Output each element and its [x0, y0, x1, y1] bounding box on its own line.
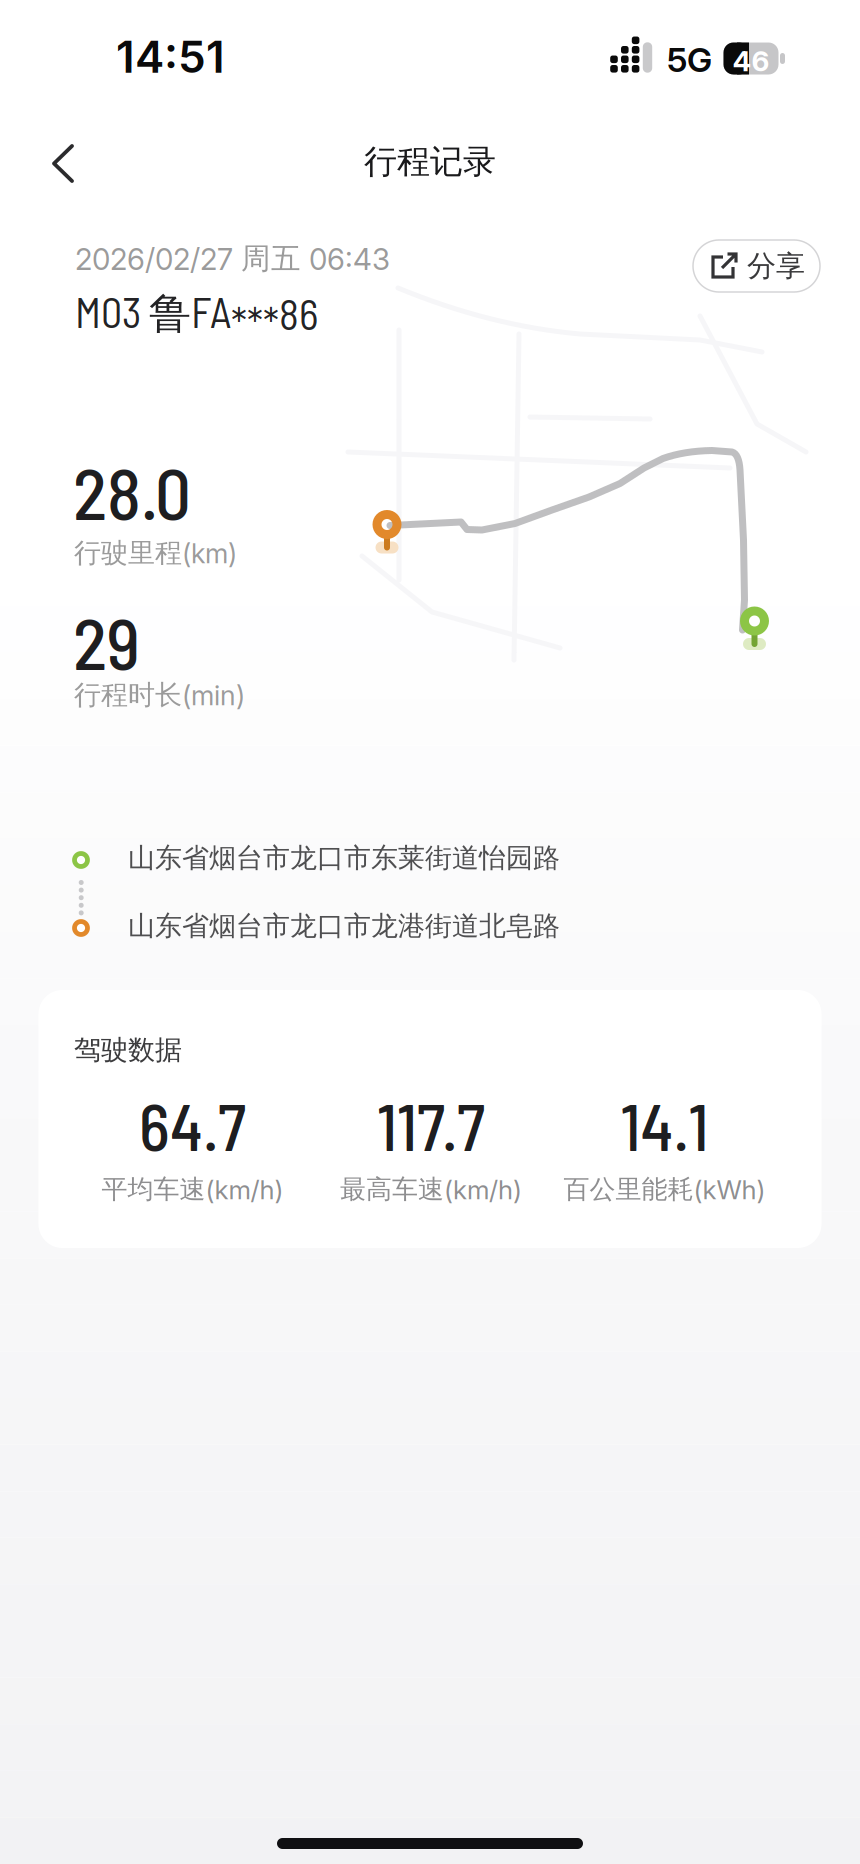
staticText: 29: [73, 599, 140, 684]
button[interactable]: Back: [0, 0, 860, 1864]
staticText: 行驶里程(km): [74, 536, 237, 570]
staticText: 117.7: [377, 1086, 485, 1164]
staticText: 山东省烟台市龙口市东莱街道怡园路: [128, 841, 560, 875]
staticText: 分享: [747, 248, 805, 284]
staticText: 山东省烟台市龙口市龙港街道北皂路: [128, 909, 560, 943]
staticText: 46: [732, 44, 769, 78]
staticText: 平均车速(km/h): [101, 1173, 283, 1206]
staticText: 5G: [667, 39, 712, 80]
staticText: 64.7: [139, 1086, 246, 1164]
staticText: 行程时长(min): [74, 678, 245, 712]
staticText: 行程记录: [364, 141, 496, 183]
staticText: 28.0: [73, 449, 191, 534]
button[interactable]: 分享: [693, 240, 820, 292]
staticText: 驾驶数据: [74, 1033, 182, 1067]
staticText: 14.1: [620, 1086, 708, 1164]
staticText: M03 鲁FA: [75, 286, 231, 340]
staticText: 最高车速(km/h): [340, 1173, 522, 1206]
staticText: 86: [279, 288, 318, 338]
staticText: 百公里能耗(kWh): [563, 1173, 765, 1206]
staticText: 14:51: [116, 30, 225, 83]
staticText: 2026/02/27 周五 06:43: [75, 240, 390, 277]
staticText: ***: [231, 297, 279, 347]
